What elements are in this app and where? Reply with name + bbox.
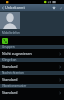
button[interactable]: Vibrationsmuster [0, 84, 64, 97]
staticText: Nicht zugewiesen [2, 51, 56, 56]
staticText: Standard [2, 64, 56, 69]
staticText: Nachrichtenton [2, 71, 24, 75]
staticText: Standard [2, 77, 56, 82]
button[interactable]: Edit contact [57, 4, 64, 11]
staticText: Unbekannt [5, 5, 25, 10]
staticText: Gruppen [2, 45, 15, 49]
staticText: Klingelton [2, 58, 17, 62]
staticText: Mobiltelefon [2, 31, 20, 35]
button[interactable]: Klingelton [0, 58, 64, 71]
button[interactable]: Back [0, 4, 5, 11]
button[interactable]: Nachrichtenton [0, 71, 64, 84]
staticText: Vibrationsmuster [2, 84, 27, 88]
button[interactable]: Gruppen [0, 45, 64, 58]
button[interactable]: Add to favourites [50, 4, 57, 11]
button[interactable]: Call [0, 36, 64, 45]
staticText: Standard [2, 90, 56, 95]
